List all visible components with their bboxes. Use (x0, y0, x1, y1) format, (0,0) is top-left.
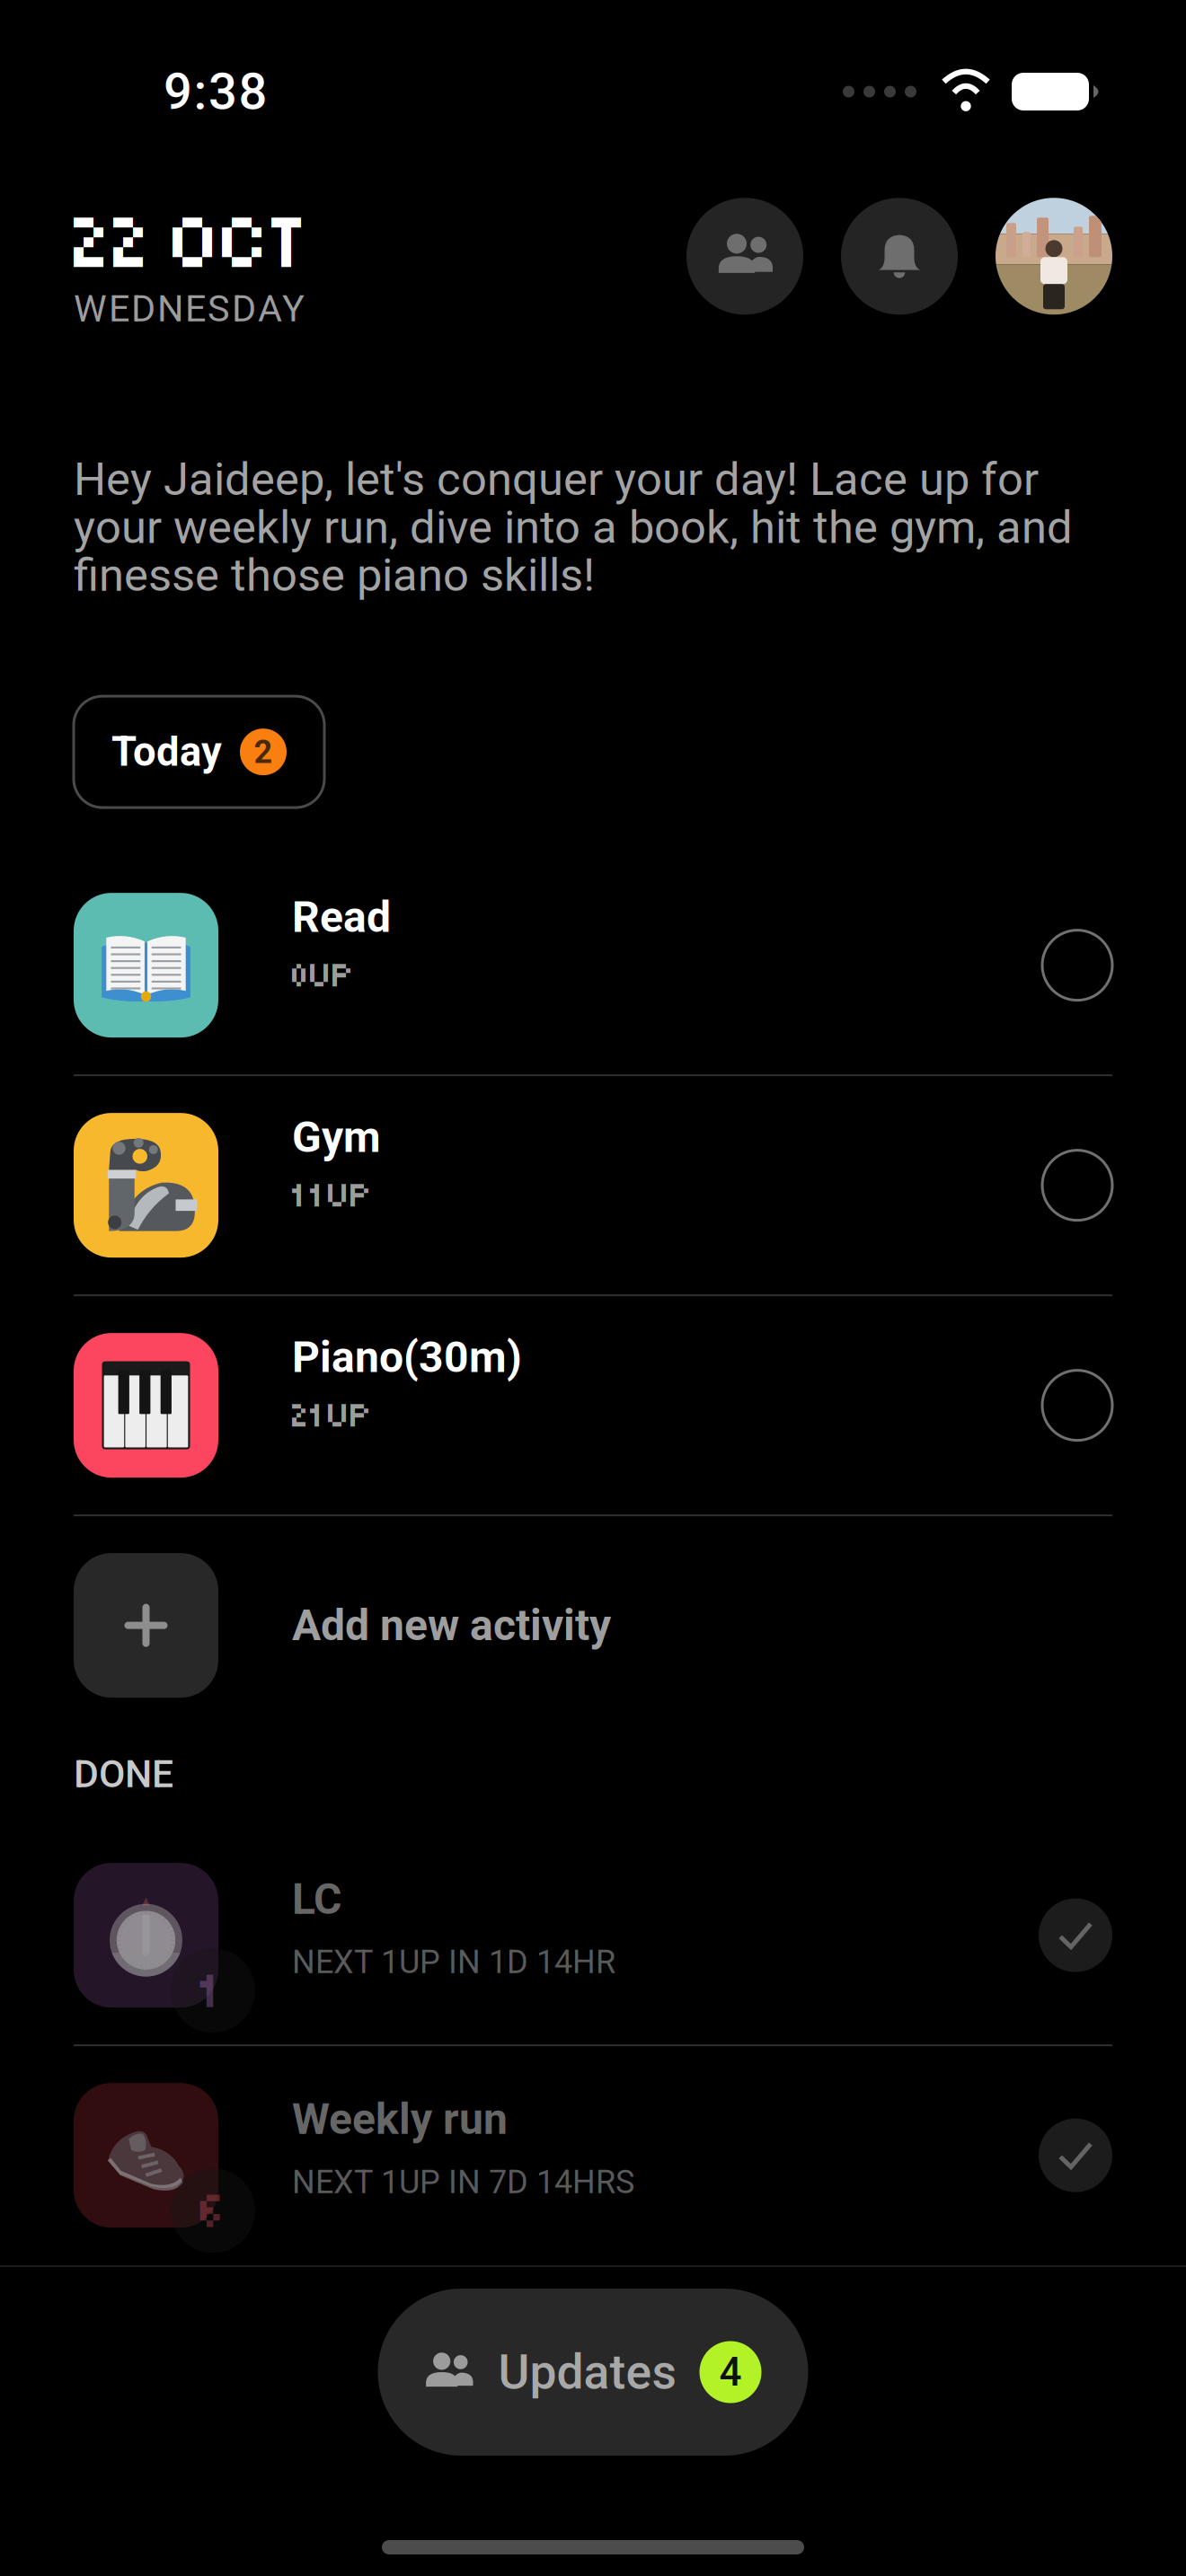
button[interactable]: Profile (996, 198, 1112, 315)
button[interactable]: Add new activity (74, 1516, 1112, 1734)
staticText: Hey Jaideep, let's conquer your day! Lac… (74, 453, 1073, 602)
staticText: 9:38 (164, 62, 267, 121)
staticText: 2 (254, 733, 273, 771)
button[interactable]: Read (74, 856, 1112, 1074)
button[interactable]: Gym (74, 1076, 1112, 1294)
button[interactable]: Notifications (841, 198, 958, 315)
staticText: NEXT 1UP IN 1D 14HR (292, 1943, 615, 1981)
staticText: Today (111, 728, 222, 776)
staticText: 0UP (292, 955, 355, 995)
button[interactable]: Friends (686, 198, 803, 315)
staticText: Weekly run (292, 2094, 508, 2144)
staticText: Piano(30m) (292, 1332, 522, 1382)
staticText: LC (292, 1874, 341, 1924)
staticText: NEXT 1UP IN 7D 14HRS (292, 2163, 634, 2201)
staticText: Read (292, 892, 391, 942)
staticText: 22 OCT (74, 198, 311, 287)
staticText: DONE (74, 1752, 173, 1796)
staticText: 1 (200, 1961, 226, 2020)
staticText: 11UP (292, 1175, 373, 1215)
button[interactable]: Updates (378, 2289, 808, 2456)
staticText: Gym (292, 1112, 381, 1162)
staticText: 4 (719, 2349, 742, 2395)
staticText: 6 (200, 2181, 226, 2240)
button[interactable]: Piano(30m) (74, 1296, 1112, 1514)
button[interactable]: Today (74, 696, 324, 808)
staticText: 21UP (292, 1395, 373, 1435)
button[interactable]: 1 (74, 1826, 1112, 2044)
staticText: Updates (498, 2344, 676, 2400)
button[interactable]: 6 (74, 2046, 1112, 2264)
staticText: Add new activity (292, 1600, 611, 1651)
staticText: WEDNESDAY (74, 287, 305, 330)
